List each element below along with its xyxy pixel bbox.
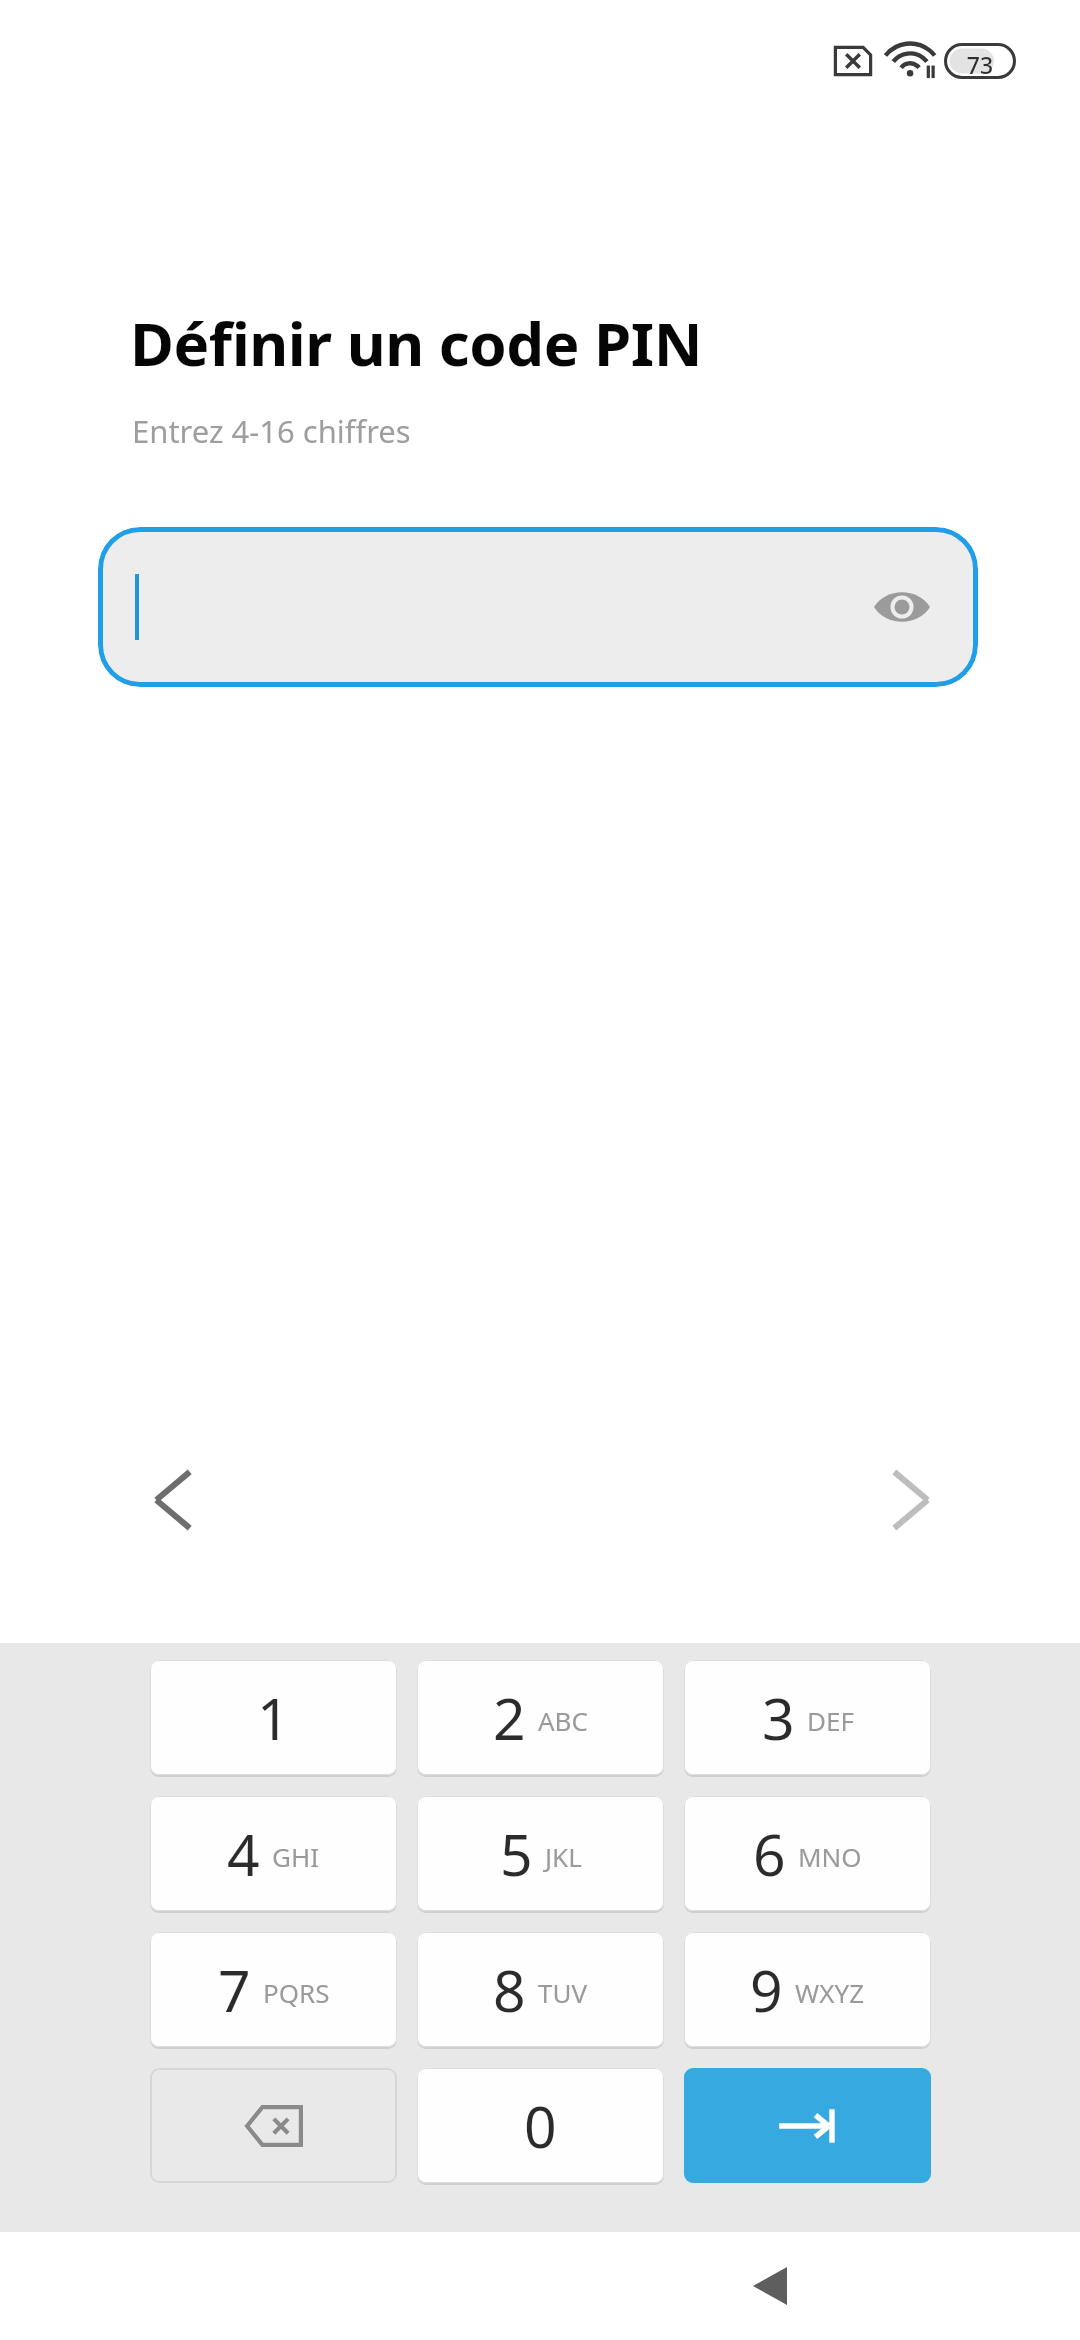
staticText: DEF — [807, 1703, 854, 1738]
staticText: TUV — [538, 1975, 588, 2010]
button[interactable]: 9 — [684, 1932, 931, 2047]
button[interactable]: 6 — [684, 1796, 931, 1911]
button[interactable]: Backspace — [150, 2068, 397, 2183]
staticText: 73 — [944, 49, 1016, 80]
button[interactable]: 8 — [417, 1932, 664, 2047]
staticText: Entrez 4-16 chiffres — [132, 410, 411, 452]
button[interactable]: Next — [856, 1440, 966, 1560]
button[interactable]: Show PIN — [864, 569, 940, 645]
button[interactable]: Show PIN — [98, 527, 978, 687]
staticText: 6 — [753, 1815, 786, 1893]
staticText: ABC — [538, 1703, 588, 1738]
staticText: WXYZ — [795, 1975, 865, 2010]
staticText: Définir un code PIN — [130, 302, 702, 384]
button[interactable]: 4 — [150, 1796, 397, 1911]
staticText: 5 — [500, 1815, 533, 1893]
button[interactable]: 1 — [150, 1660, 397, 1775]
staticText: 2 — [493, 1679, 526, 1757]
button[interactable]: 3 — [684, 1660, 931, 1775]
button[interactable]: 5 — [417, 1796, 664, 1911]
staticText: MNO — [798, 1839, 862, 1874]
staticText: 8 — [493, 1951, 526, 2029]
staticText: 0 — [524, 2087, 557, 2165]
staticText: 1 — [257, 1679, 290, 1757]
staticText: 9 — [750, 1951, 783, 2029]
staticText: 3 — [762, 1679, 795, 1757]
staticText: PQRS — [263, 1975, 330, 2010]
button[interactable]: 0 — [417, 2068, 664, 2183]
button[interactable]: Enter — [684, 2068, 931, 2183]
staticText: 4 — [227, 1815, 260, 1893]
staticText: 7 — [218, 1951, 251, 2029]
staticText: JKL — [545, 1839, 582, 1874]
button[interactable]: Previous — [118, 1440, 228, 1560]
button[interactable]: 7 — [150, 1932, 397, 2047]
button[interactable]: 2 — [417, 1660, 664, 1775]
button[interactable]: Back — [715, 2232, 825, 2340]
staticText: GHI — [272, 1839, 320, 1874]
